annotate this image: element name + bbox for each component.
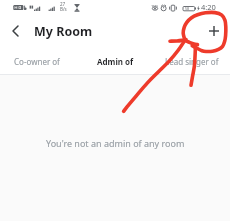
staticText: 58 <box>185 6 190 11</box>
button[interactable]: Admin of <box>76 46 153 74</box>
button[interactable]: Co-owner of <box>0 46 76 74</box>
staticText: My Room <box>34 23 93 40</box>
button[interactable]: Lead singer of <box>153 46 230 74</box>
button[interactable]: Back <box>5 21 25 41</box>
staticText: Admin of <box>97 56 134 67</box>
staticText: Lead singer of <box>165 56 219 67</box>
staticText: Co-owner of <box>14 56 60 67</box>
staticText: 27 B/s <box>60 1 67 12</box>
button[interactable]: Add <box>204 21 224 41</box>
staticText: You're not an admin of any room <box>46 137 185 149</box>
staticText: 4:20 <box>201 2 216 12</box>
